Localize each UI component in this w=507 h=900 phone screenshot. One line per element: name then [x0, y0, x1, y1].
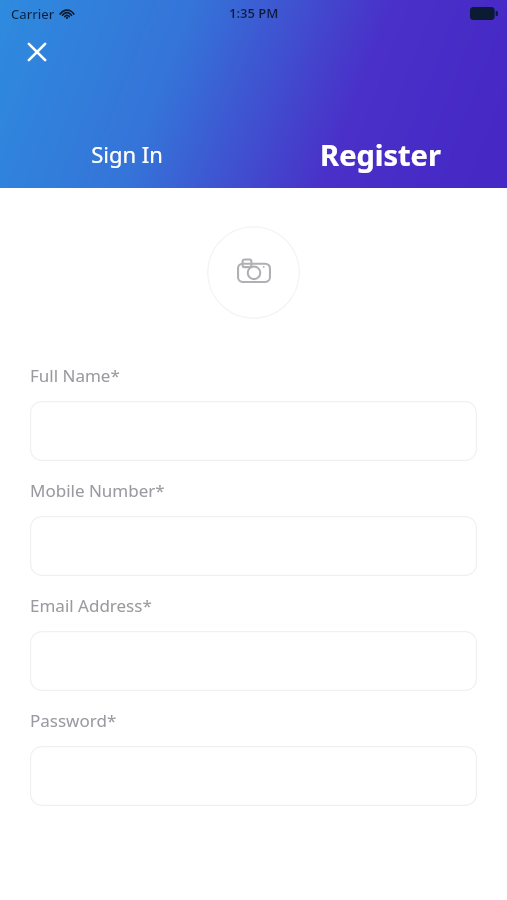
button[interactable]: Sign In — [0, 128, 254, 180]
staticText: Full Name* — [30, 364, 120, 387]
staticText: Email Address* — [30, 594, 152, 617]
staticText: Carrier — [11, 5, 55, 23]
button[interactable]: Close — [17, 32, 57, 72]
staticText: Password* — [30, 709, 117, 732]
button[interactable]: Add profile photo — [207, 226, 300, 319]
staticText: Register — [320, 135, 441, 174]
button[interactable]: Register — [254, 128, 507, 180]
staticText: Mobile Number* — [30, 479, 165, 502]
staticText: 1:35 PM — [229, 4, 279, 22]
staticText: Sign In — [91, 139, 163, 169]
